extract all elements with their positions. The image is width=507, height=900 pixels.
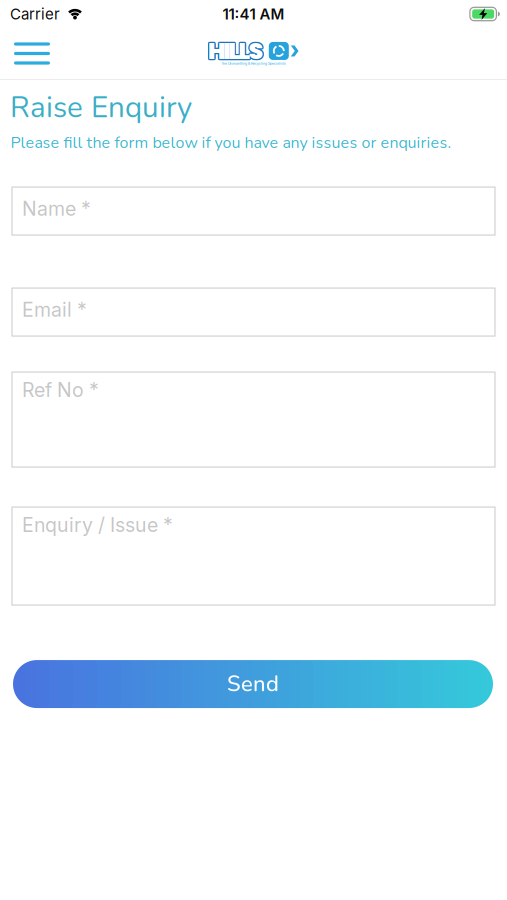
staticText: Email * xyxy=(22,298,87,321)
staticText: HILLS xyxy=(209,35,264,67)
button[interactable]: Email * xyxy=(12,288,495,336)
staticText: HILLS xyxy=(207,34,262,66)
button[interactable]: Ref No * xyxy=(12,372,495,467)
staticText: The Dismantling & Recycling Specialists xyxy=(221,61,286,66)
staticText: Please fill the form below if you have a… xyxy=(10,132,451,153)
button[interactable]: Menu xyxy=(0,36,58,71)
staticText: Raise Enquiry xyxy=(10,87,192,128)
staticText: Name * xyxy=(22,197,91,220)
button[interactable]: Send xyxy=(13,660,493,708)
button[interactable]: HILLS home xyxy=(208,35,299,72)
button[interactable]: Name * xyxy=(12,187,495,235)
staticText: HILLS xyxy=(208,34,263,66)
staticText: HILLS xyxy=(207,35,262,67)
staticText: HILLS xyxy=(207,36,262,68)
staticText: Carrier xyxy=(10,5,60,23)
staticText: Send xyxy=(227,669,279,699)
staticText: HILLS xyxy=(208,35,263,67)
staticText: Enquiry / Issue * xyxy=(22,513,173,537)
button[interactable]: Enquiry / Issue * xyxy=(12,507,495,605)
staticText: HILLS xyxy=(209,36,264,68)
staticText: 11:41 AM xyxy=(222,5,284,23)
staticText: Ref No * xyxy=(22,378,99,402)
staticText: HILLS xyxy=(208,36,263,68)
staticText: HILLS xyxy=(209,34,264,66)
